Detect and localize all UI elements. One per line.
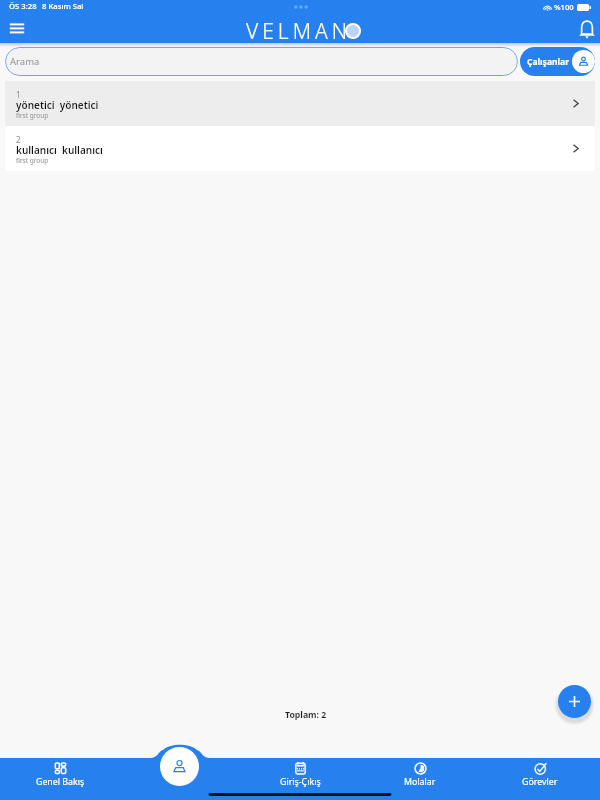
staticText: first group xyxy=(16,156,49,165)
button[interactable]: Menu xyxy=(7,18,27,38)
button[interactable]: 2 xyxy=(5,126,595,171)
staticText: Molalar xyxy=(404,776,436,788)
button[interactable]: Add xyxy=(558,685,591,718)
staticText: first group xyxy=(16,111,49,120)
staticText: yönetici yönetici xyxy=(16,98,99,112)
button[interactable]: Genel Bakış xyxy=(0,758,120,790)
staticText: 8 Kasım Sal xyxy=(42,1,84,11)
button[interactable]: Görevler xyxy=(480,758,600,790)
staticText: 2 xyxy=(16,134,21,145)
button[interactable]: Çalışanlar xyxy=(520,47,595,76)
staticText: Genel Bakış xyxy=(36,776,85,788)
staticText: Çalışanlar xyxy=(527,56,569,68)
button[interactable]: Giriş-Çıkış xyxy=(240,758,360,790)
button[interactable]: Profile xyxy=(160,747,199,786)
button[interactable]: Molalar xyxy=(360,758,480,790)
staticText: 1 xyxy=(16,89,21,100)
staticText: VELMAN xyxy=(246,17,352,46)
button[interactable]: 1 xyxy=(5,81,595,126)
staticText: Görevler xyxy=(522,776,558,788)
button[interactable]: Arama xyxy=(5,47,518,76)
staticText: kullanıcı kullanıcı xyxy=(16,143,103,157)
button[interactable]: Notifications xyxy=(578,19,596,40)
staticText: Toplam: 2 xyxy=(285,709,327,721)
staticText: Giriş-Çıkış xyxy=(280,776,321,788)
staticText: ÖS 3:28 xyxy=(9,1,37,11)
staticText: %100 xyxy=(554,2,574,12)
staticText: Arama xyxy=(10,55,40,68)
